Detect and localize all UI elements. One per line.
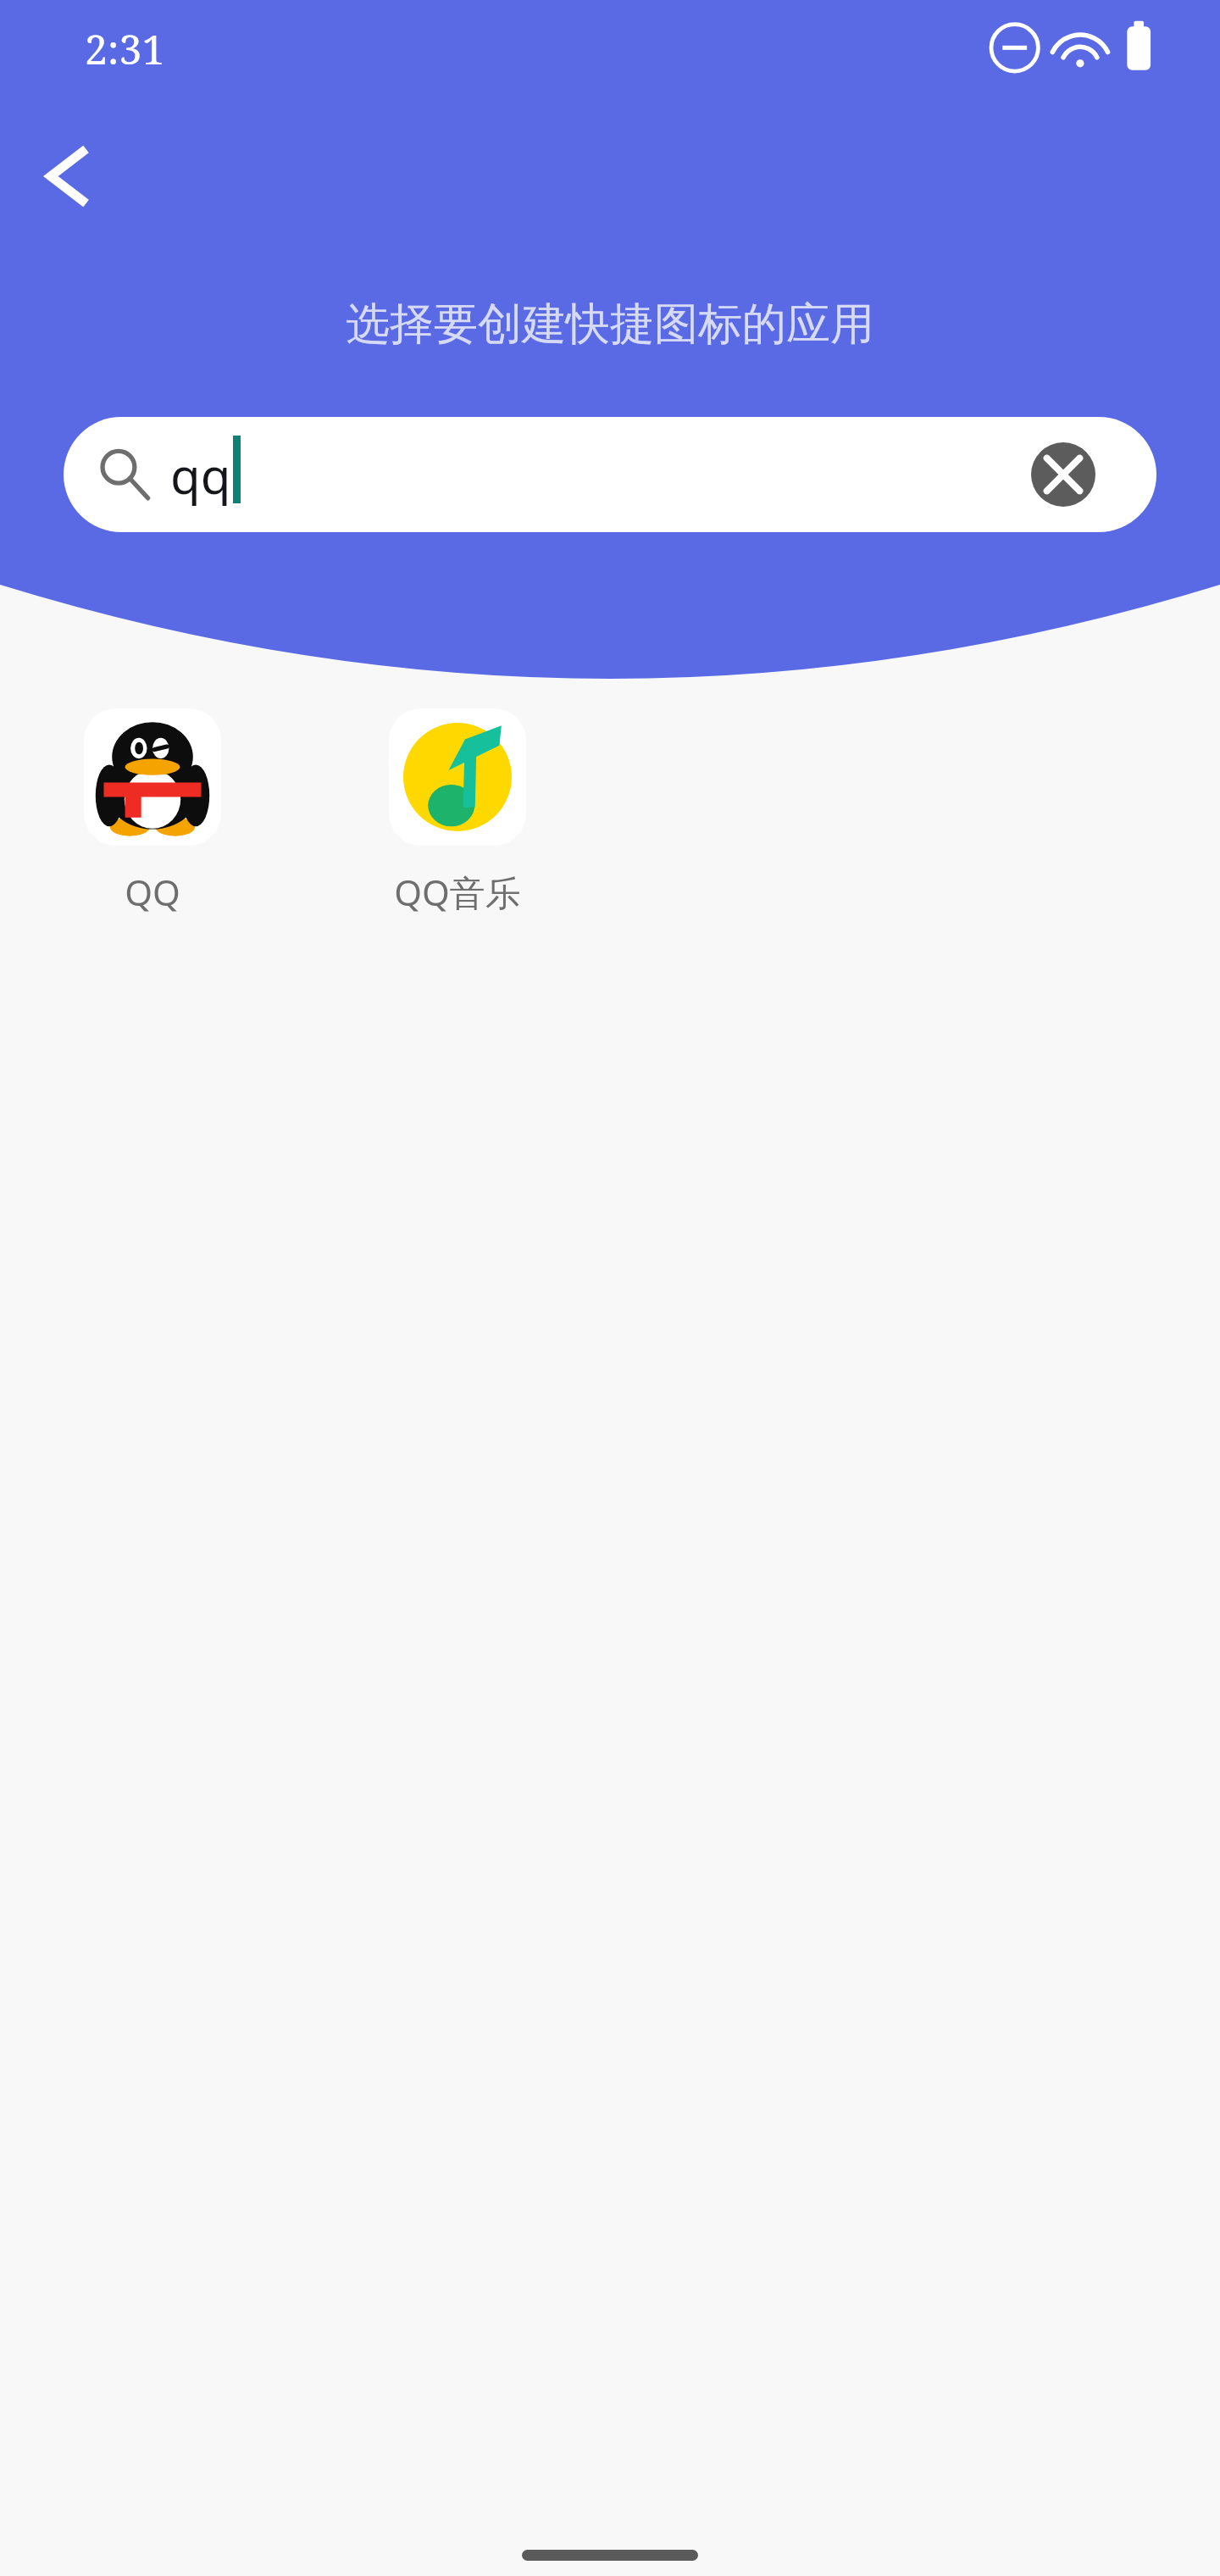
button[interactable]: Clear search (1023, 434, 1104, 515)
button[interactable]: qq (64, 417, 1156, 532)
staticText: 2:31 (85, 21, 165, 76)
button[interactable]: Back (10, 119, 125, 234)
staticText: 选择要创建快捷图标的应用 (0, 297, 1220, 353)
button[interactable]: QQ音乐 (305, 708, 610, 916)
staticText: QQ音乐 (394, 868, 521, 916)
button[interactable]: QQ (0, 708, 305, 916)
staticText: QQ (125, 868, 180, 916)
staticText: qq (170, 441, 231, 508)
